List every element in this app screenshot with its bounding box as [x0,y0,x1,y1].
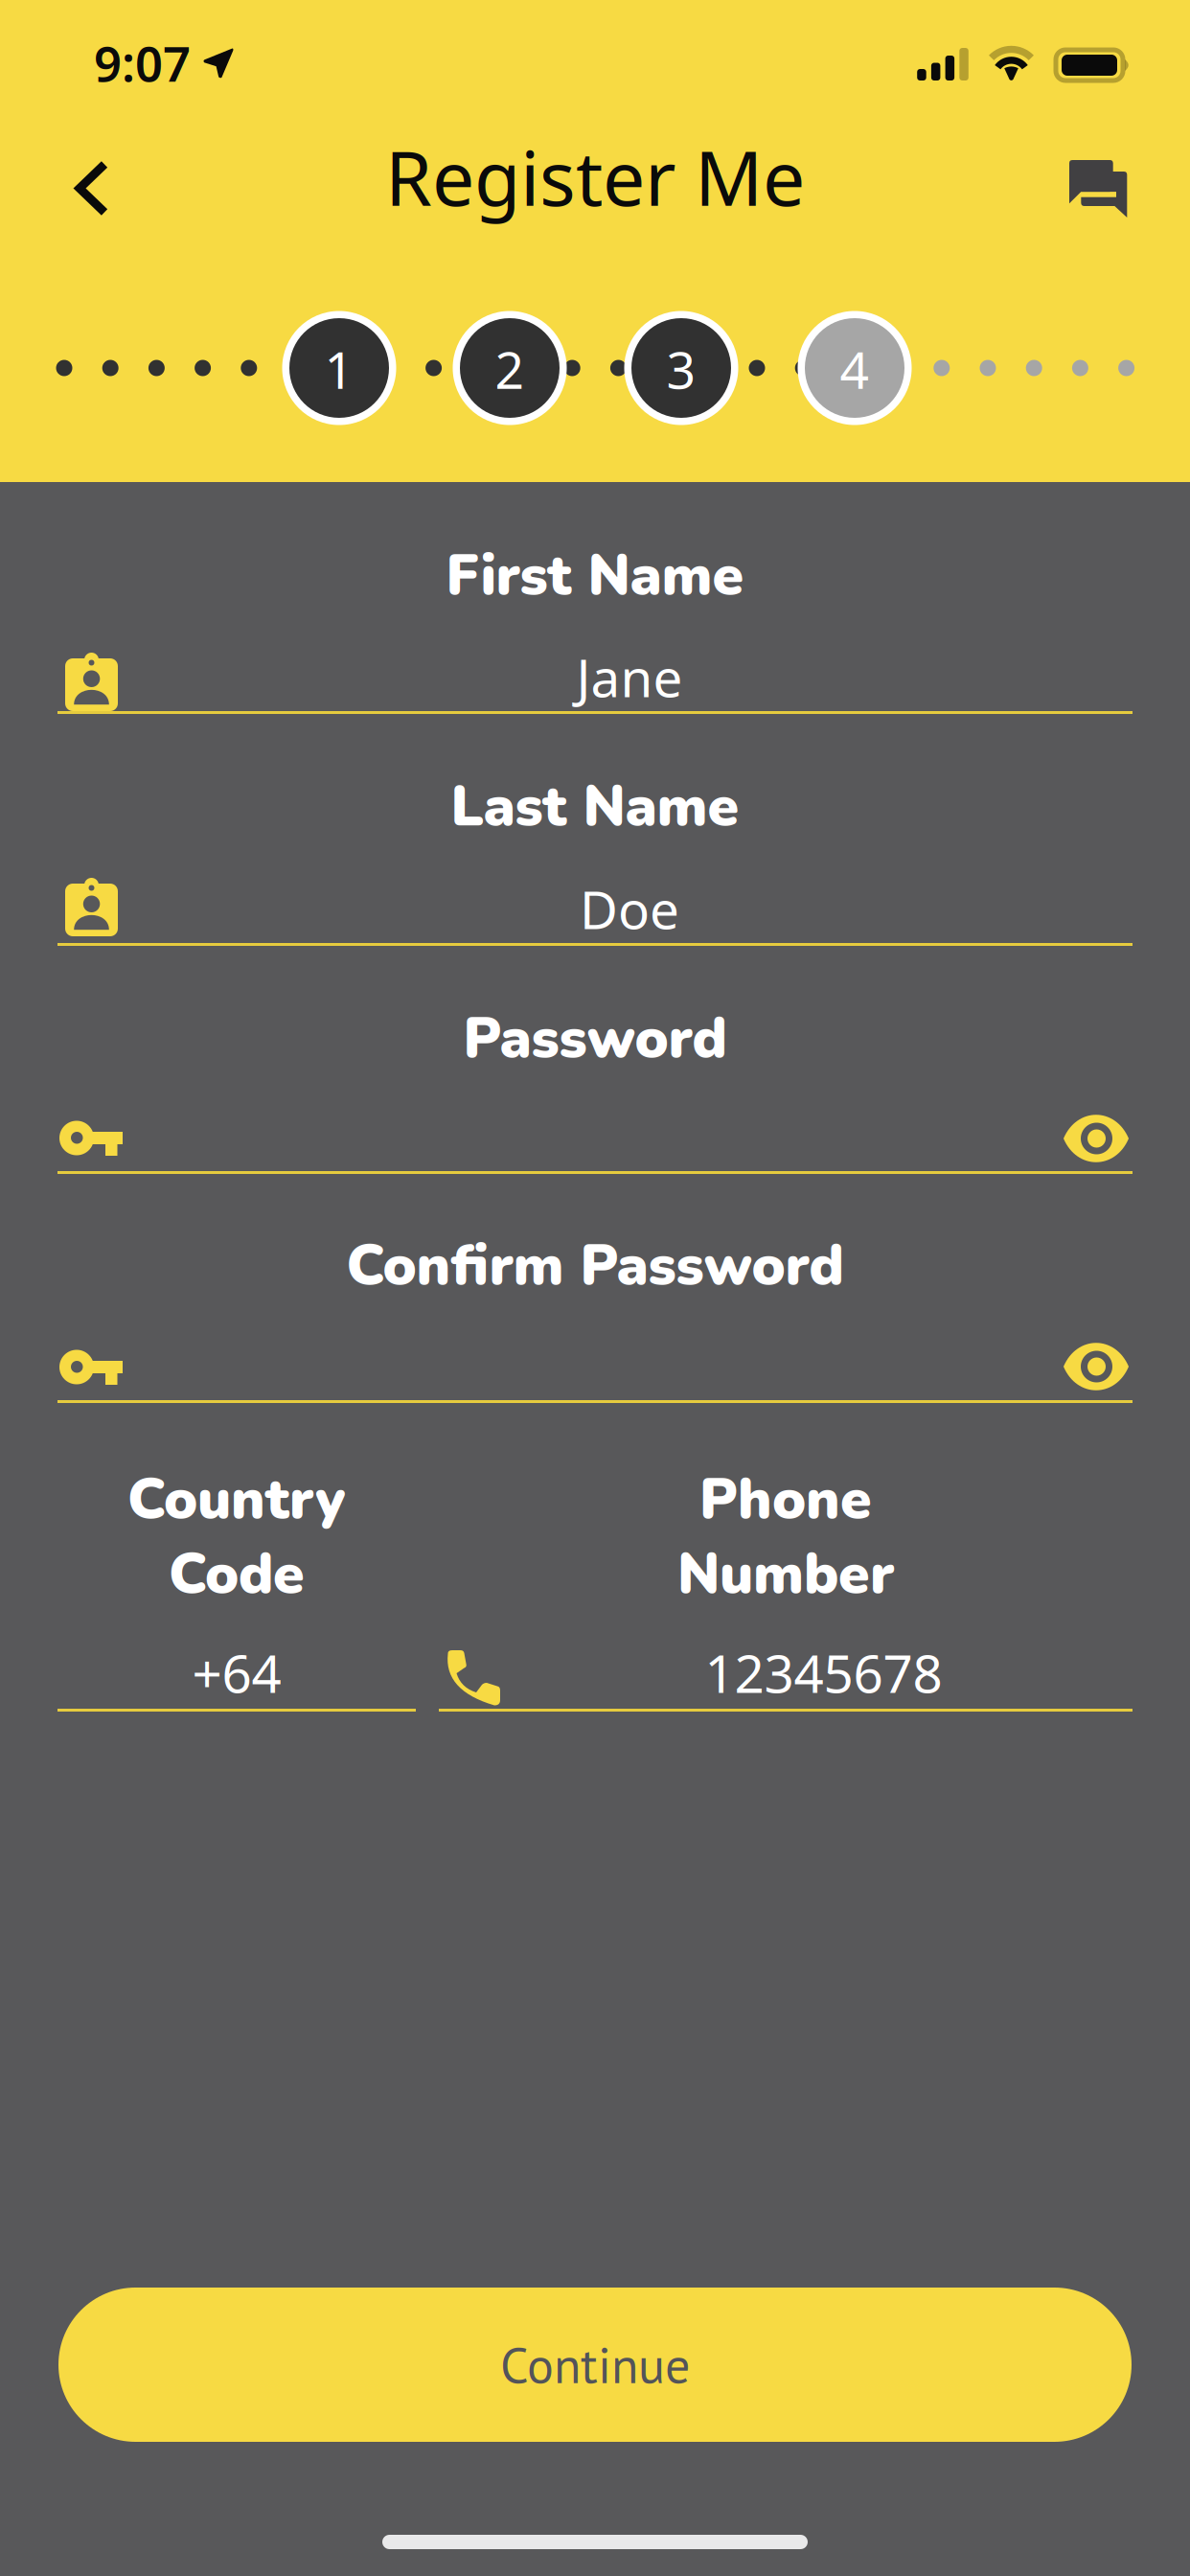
staticText: 2 [495,335,525,403]
staticText: Register Me [385,126,805,227]
staticText: +64 [192,1638,281,1707]
staticText: Doe [580,874,679,944]
staticText: Jane [576,642,683,712]
staticText: 12345678 [705,1638,942,1707]
staticText: Password [463,1000,727,1077]
staticText: Confirm Password [346,1228,844,1304]
staticText: 3 [666,335,696,403]
staticText: Code [169,1536,305,1613]
staticText: Last Name [451,769,739,845]
staticText: First Name [446,538,744,614]
button[interactable]: Back [0,0,1190,106]
staticText: 4 [840,335,870,403]
staticText: 1 [324,335,354,403]
staticText: Country [127,1461,346,1538]
staticText: Phone [699,1461,872,1538]
staticText: 9:07 [94,31,191,95]
button[interactable]: Messages [0,0,1190,107]
staticText: Number [677,1536,894,1613]
button[interactable]: Continue [0,0,1190,154]
staticText: Continue [500,2332,690,2397]
